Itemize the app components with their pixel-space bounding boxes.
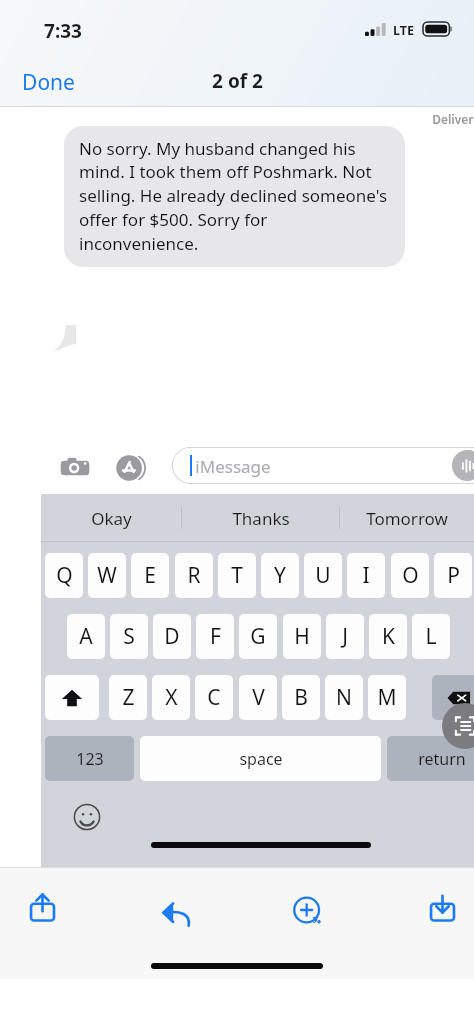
staticText: C <box>207 683 221 712</box>
button[interactable]: Delete <box>432 675 474 720</box>
button[interactable]: Q <box>45 553 83 598</box>
staticText: Q <box>56 561 73 590</box>
button[interactable]: New message <box>286 888 330 936</box>
staticText: Z <box>122 683 135 712</box>
button[interactable]: N <box>325 675 363 720</box>
button[interactable]: Emoji <box>71 801 103 833</box>
button[interactable]: 123 <box>45 736 134 781</box>
button[interactable]: D <box>153 614 191 659</box>
staticText: T <box>231 561 243 590</box>
button[interactable]: J <box>326 614 364 659</box>
staticText: F <box>210 622 221 651</box>
staticText: R <box>187 561 201 590</box>
staticText: Thanks <box>232 507 290 530</box>
button[interactable]: Thanks <box>182 495 339 541</box>
staticText: B <box>294 683 308 712</box>
staticText: W <box>97 561 117 590</box>
button[interactable]: Save <box>420 883 464 931</box>
staticText: Okay <box>91 507 132 530</box>
button[interactable]: Z <box>109 675 147 720</box>
staticText: H <box>294 622 310 651</box>
staticText: L <box>425 622 437 651</box>
staticText: Done <box>22 68 75 97</box>
button[interactable]: S <box>110 614 148 659</box>
button[interactable]: W <box>88 553 126 598</box>
staticText: N <box>336 683 352 712</box>
staticText: space <box>239 748 283 770</box>
button[interactable]: H <box>283 614 321 659</box>
button[interactable]: Done <box>14 64 83 101</box>
staticText: return <box>418 748 466 770</box>
button[interactable]: Tomorrow <box>340 495 474 541</box>
button[interactable]: T <box>218 553 256 598</box>
button[interactable]: Shift <box>45 675 99 720</box>
button[interactable]: E <box>131 553 169 598</box>
staticText: J <box>342 622 348 651</box>
button[interactable]: F <box>196 614 234 659</box>
button[interactable]: C <box>195 675 233 720</box>
staticText: 7:33 <box>44 18 82 44</box>
button[interactable]: I <box>347 553 385 598</box>
button[interactable]: M <box>368 675 406 720</box>
staticText: D <box>164 622 180 651</box>
staticText: U <box>315 561 331 590</box>
button[interactable]: V <box>239 675 277 720</box>
staticText: I <box>362 561 370 590</box>
button[interactable]: B <box>282 675 320 720</box>
button[interactable]: L <box>412 614 450 659</box>
button[interactable]: Text formatting <box>442 703 474 749</box>
button[interactable]: Y <box>261 553 299 598</box>
button[interactable]: Okay <box>41 495 181 541</box>
button[interactable]: Share <box>20 883 64 931</box>
button[interactable]: iMessage <box>172 447 474 484</box>
button[interactable]: U <box>304 553 342 598</box>
button[interactable]: Camera <box>60 453 90 483</box>
staticText: 123 <box>76 748 104 770</box>
button[interactable]: return <box>387 736 474 781</box>
staticText: S <box>123 622 135 651</box>
staticText: V <box>252 683 265 712</box>
staticText: X <box>165 683 178 712</box>
button[interactable]: G <box>239 614 277 659</box>
staticText: O <box>402 561 419 590</box>
staticText: G <box>250 622 266 651</box>
staticText: E <box>144 561 156 590</box>
button[interactable]: A <box>67 614 105 659</box>
staticText: Delivered <box>432 111 474 127</box>
staticText: iMessage <box>195 455 271 478</box>
staticText: M <box>377 683 397 712</box>
staticText: A <box>79 622 93 651</box>
staticText: K <box>382 622 395 651</box>
staticText: Tomorrow <box>366 507 448 530</box>
button[interactable]: space <box>140 736 381 781</box>
button[interactable]: Audio message <box>452 450 474 481</box>
button[interactable]: App Store <box>115 452 147 484</box>
button[interactable]: P <box>434 553 472 598</box>
button[interactable]: K <box>369 614 407 659</box>
button[interactable]: R <box>175 553 213 598</box>
staticText: LTE <box>393 22 414 39</box>
staticText: 2 of 2 <box>212 68 263 94</box>
button[interactable]: X <box>152 675 190 720</box>
button[interactable]: Reply <box>155 890 199 938</box>
staticText: P <box>447 561 460 590</box>
staticText: No sorry. My husband changed his mind. I… <box>79 137 391 255</box>
button[interactable]: No sorry. My husband changed his mind. I… <box>64 126 405 267</box>
button[interactable]: O <box>391 553 429 598</box>
staticText: Y <box>274 561 286 590</box>
